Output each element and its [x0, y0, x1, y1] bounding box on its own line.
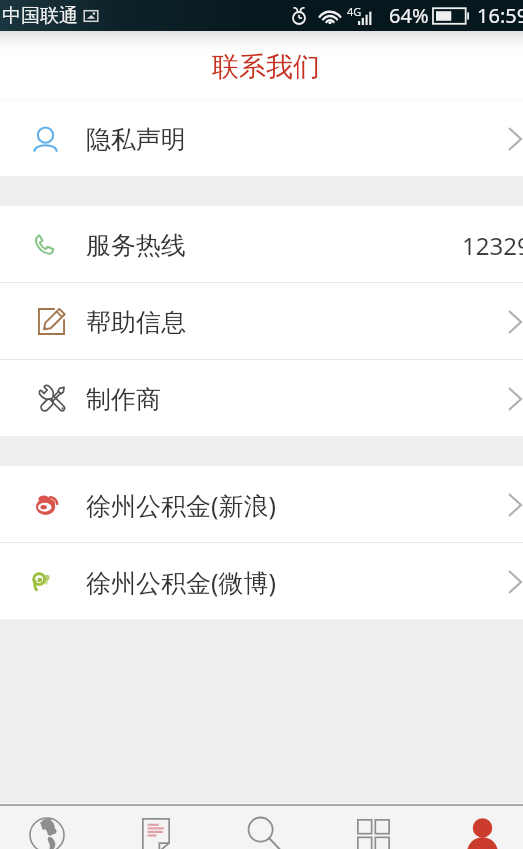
staticText: 服务热线 [86, 230, 186, 261]
button[interactable]: 制作商 [0, 360, 523, 436]
staticText: 12329 [462, 229, 523, 262]
staticText: 徐州公积金(微博) [86, 565, 277, 599]
staticText: 16:59 [477, 2, 523, 29]
staticText: 徐州公积金(新浪) [86, 488, 277, 522]
button[interactable]: 徐州公积金(微博) [0, 543, 523, 619]
staticText: 64% [389, 2, 429, 29]
staticText: 制作商 [86, 384, 161, 415]
staticText: 隐私声明 [86, 124, 186, 155]
button[interactable]: 服务热线 [0, 206, 523, 282]
button[interactable]: 我的 [428, 806, 523, 849]
button[interactable]: 帮助信息 [0, 283, 523, 359]
staticText: 帮助信息 [86, 307, 186, 338]
button[interactable]: 徐州公积金(新浪) [0, 466, 523, 542]
button[interactable]: 首页 [0, 806, 101, 849]
staticText: 中国联通 [2, 4, 78, 28]
button[interactable]: 资讯 [101, 806, 210, 849]
staticText: 4G [347, 4, 362, 19]
staticText: 联系我们 [212, 50, 320, 84]
button[interactable]: 服务 [319, 806, 428, 849]
button[interactable]: 隐私声明 [0, 100, 523, 176]
button[interactable]: 查询 [210, 806, 319, 849]
